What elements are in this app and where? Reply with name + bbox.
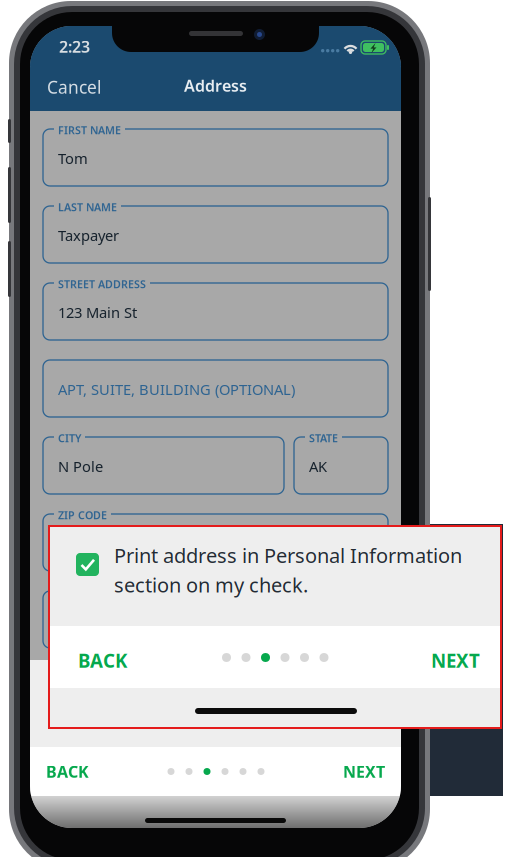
button[interactable]: NEXT <box>335 752 393 791</box>
staticText: Taxpayer <box>58 225 119 245</box>
button[interactable]: Print address in Personal Information se… <box>76 553 99 576</box>
button[interactable]: BACK <box>68 636 137 685</box>
staticText: BACK <box>46 761 89 782</box>
staticText: Print address in Personal Information <box>114 542 462 569</box>
staticText: STREET ADDRESS <box>58 277 146 291</box>
staticText: AK <box>309 456 327 476</box>
staticText: 2:23 <box>59 36 90 57</box>
staticText: FIRST NAME <box>58 123 121 137</box>
staticText: Cancel <box>47 75 101 98</box>
staticText: STATE <box>309 431 338 445</box>
staticText: NEXT <box>343 761 385 782</box>
staticText: 123 Main St <box>58 302 137 322</box>
staticText: Address <box>184 75 247 96</box>
staticText: BACK <box>78 648 127 673</box>
staticText: Tom <box>58 148 88 168</box>
staticText: CITY <box>58 431 81 445</box>
staticText: N Pole <box>58 456 103 476</box>
staticText: LAST NAME <box>58 200 117 214</box>
staticText: APT, SUITE, BUILDING (OPTIONAL) <box>58 379 295 399</box>
staticText: ZIP CODE <box>58 508 107 522</box>
button[interactable]: NEXT <box>421 636 490 685</box>
button[interactable]: BACK <box>38 752 97 791</box>
button[interactable]: Cancel <box>39 68 109 105</box>
staticText: NEXT <box>431 648 480 673</box>
staticText: section on my check. <box>114 572 308 598</box>
